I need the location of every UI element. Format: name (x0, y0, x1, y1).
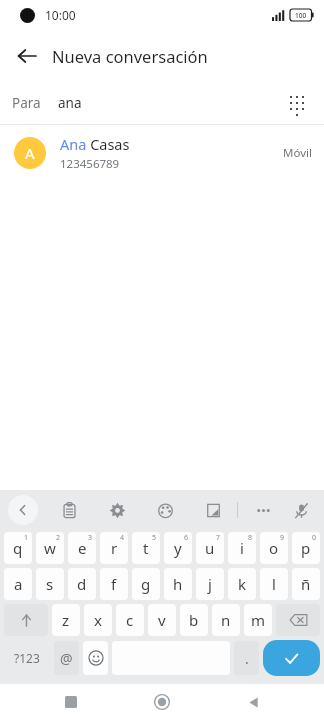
staticText: 9 (280, 533, 285, 543)
button[interactable]: Emoji (83, 641, 108, 675)
staticText: 6 (184, 533, 189, 543)
staticText: w (44, 538, 56, 558)
staticText: 100 (295, 11, 307, 20)
button[interactable]: j (196, 568, 224, 600)
button[interactable]: ñ (292, 568, 320, 600)
button[interactable]: Clipboard (56, 497, 82, 523)
button[interactable]: k (228, 568, 256, 600)
button[interactable]: Home (142, 684, 182, 720)
button[interactable]: g (132, 568, 160, 600)
staticText: f (111, 574, 117, 594)
staticText: d (77, 574, 87, 594)
button[interactable]: p (292, 532, 320, 564)
staticText: e (78, 538, 87, 558)
button[interactable]: l (260, 568, 288, 600)
staticText: p (301, 538, 311, 558)
staticText: a (14, 574, 23, 594)
button[interactable]: Dialpad (278, 84, 316, 122)
button[interactable]: @ (54, 641, 79, 675)
button[interactable]: o (260, 532, 288, 564)
button[interactable]: Settings (104, 497, 130, 523)
button[interactable]: Resize (200, 497, 226, 523)
staticText: h (173, 574, 183, 594)
button[interactable]: h (164, 568, 192, 600)
staticText: b (189, 610, 199, 630)
button[interactable]: Back (233, 684, 273, 720)
button[interactable]: . (234, 641, 259, 675)
staticText: Móvil (283, 145, 312, 161)
staticText: . (245, 649, 249, 668)
button[interactable]: Theme (152, 497, 178, 523)
button[interactable]: Collapse (8, 495, 38, 525)
button[interactable]: q (4, 532, 32, 564)
button[interactable]: x (84, 604, 112, 636)
button[interactable]: More (250, 497, 276, 523)
staticText: 3 (88, 533, 93, 543)
staticText: 4 (120, 533, 125, 543)
staticText: s (46, 574, 54, 594)
staticText: u (205, 538, 215, 558)
staticText: l (272, 574, 276, 594)
button[interactable]: r (100, 532, 128, 564)
staticText: 8 (248, 533, 253, 543)
staticText: k (238, 574, 247, 594)
button[interactable]: Backspace (276, 604, 320, 636)
staticText: Para (12, 94, 41, 112)
staticText: q (13, 538, 23, 558)
button[interactable]: n (212, 604, 240, 636)
staticText: ?123 (14, 650, 40, 666)
button[interactable]: d (68, 568, 96, 600)
button[interactable]: w (36, 532, 64, 564)
staticText: n (221, 610, 231, 630)
staticText: c (126, 610, 134, 630)
staticText: x (94, 610, 102, 630)
staticText: v (158, 610, 166, 630)
button[interactable]: t (132, 532, 160, 564)
staticText: 1 (24, 533, 29, 543)
staticText: t (143, 538, 149, 558)
button[interactable]: b (180, 604, 208, 636)
staticText: y (174, 538, 182, 558)
button[interactable]: v (148, 604, 176, 636)
button[interactable]: u (196, 532, 224, 564)
staticText: r (111, 538, 118, 558)
staticText: Nueva conversación (52, 45, 208, 67)
staticText: z (62, 610, 70, 630)
staticText: A (25, 143, 35, 163)
staticText: 7 (216, 533, 221, 543)
button[interactable]: c (116, 604, 144, 636)
staticText: Ana Casas (60, 134, 130, 154)
staticText: o (269, 538, 279, 558)
staticText: i (240, 538, 244, 558)
button[interactable]: Mute (288, 497, 314, 523)
staticText: 123456789 (60, 156, 120, 172)
staticText: 10:00 (45, 7, 76, 23)
staticText: ñ (301, 574, 311, 594)
button[interactable]: ?123 (4, 641, 50, 675)
button[interactable]: a (4, 568, 32, 600)
button[interactable]: Back (6, 35, 48, 77)
staticText: 0 (312, 533, 317, 543)
staticText: 5 (152, 533, 157, 543)
staticText: 2 (56, 533, 61, 543)
button[interactable]: m (244, 604, 272, 636)
button[interactable]: Shift (4, 604, 48, 636)
button[interactable]: f (100, 568, 128, 600)
button[interactable]: y (164, 532, 192, 564)
staticText: j (208, 574, 212, 594)
button[interactable]: z (52, 604, 80, 636)
staticText: m (251, 610, 266, 630)
button[interactable]: s (36, 568, 64, 600)
button[interactable]: Send (263, 640, 320, 676)
button[interactable]: A (0, 125, 324, 181)
button[interactable]: i (228, 532, 256, 564)
button[interactable]: e (68, 532, 96, 564)
staticText: ana (58, 94, 82, 112)
button[interactable]: Recents (51, 684, 91, 720)
staticText: @ (60, 649, 73, 668)
staticText: g (141, 574, 151, 594)
